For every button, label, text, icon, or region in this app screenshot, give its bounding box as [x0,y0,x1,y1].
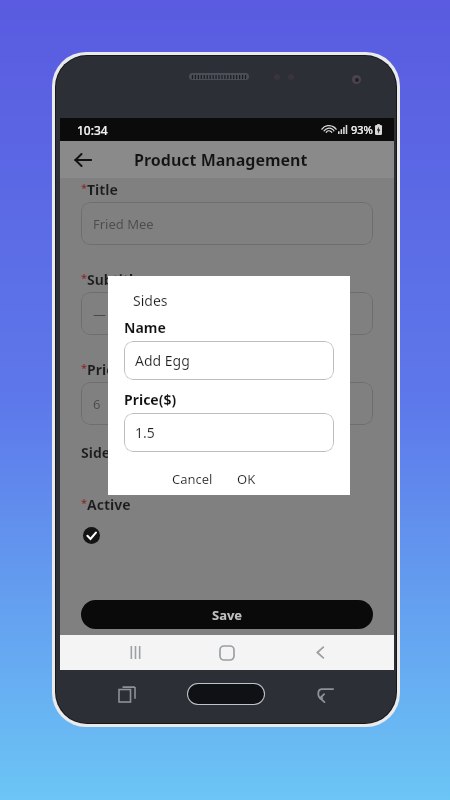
staticText: Title [87,180,118,199]
staticText: — [93,305,107,323]
button[interactable]: Home [209,635,245,670]
button[interactable]: OK [229,466,264,492]
button[interactable]: Home [188,684,264,704]
staticText: * [81,360,87,375]
staticText: Price($) [124,390,177,409]
staticText: OK [237,470,256,488]
button[interactable]: Back [66,143,100,177]
staticText: Product Management [134,149,308,171]
staticText: Name [124,318,166,337]
staticText: Fried Mee [93,215,154,233]
staticText: Active [87,495,131,514]
staticText: 1.5 [135,423,155,442]
staticText: * [81,495,87,510]
button[interactable]: Fried Mee [81,202,373,245]
button[interactable]: Back [302,635,338,670]
button[interactable]: Recent apps [117,635,153,670]
staticText: 10:34 [77,122,108,138]
button[interactable]: Active checkbox [81,525,101,545]
button[interactable]: 1.5 [124,413,334,452]
staticText: Price($) [87,360,140,379]
staticText: 6 [93,395,101,413]
staticText: Sides [133,291,168,310]
staticText: Add Egg [135,351,190,370]
staticText: Cancel [172,470,213,488]
button[interactable]: Recents [111,678,143,710]
button[interactable]: 6 [81,382,373,425]
staticText: Sides [81,443,118,462]
button[interactable]: Cancel [164,466,221,492]
button[interactable]: Add Egg [124,341,334,380]
staticText: Save [212,606,243,624]
button[interactable]: Back [309,678,341,710]
button[interactable]: — [81,292,373,335]
staticText: 93% [351,122,373,137]
staticText: * [81,270,87,285]
staticText: Subtitle [87,270,142,289]
staticText: * [81,180,87,195]
button[interactable]: Save [81,600,373,629]
